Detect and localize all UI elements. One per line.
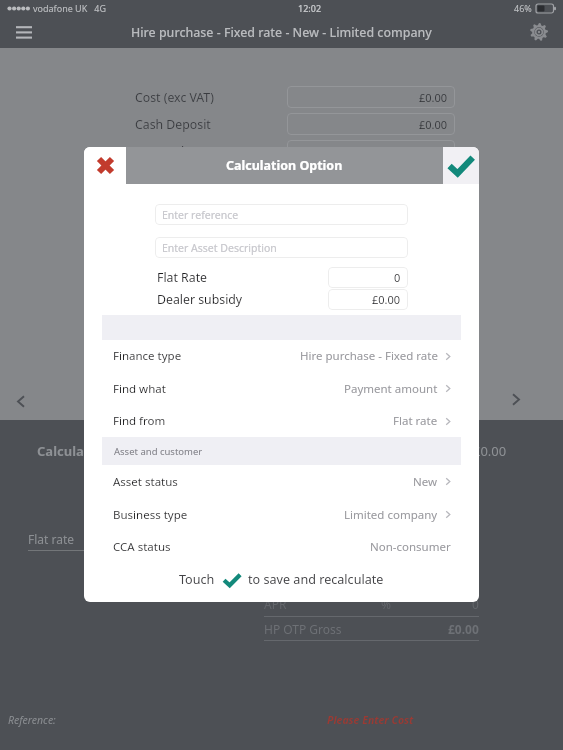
staticText: £0.00 [448, 621, 479, 637]
button[interactable]: Finance type [84, 340, 479, 372]
staticText: vodafone UK 4G [33, 2, 106, 14]
button[interactable]: Cancel [84, 147, 126, 184]
staticText: 12:02 [298, 2, 322, 14]
staticText: to save and recalculate [248, 571, 384, 588]
staticText: £0.00 [473, 442, 507, 460]
button[interactable]: CCA status [84, 531, 479, 563]
staticText: Flat rate [393, 413, 438, 429]
staticText: Flat rate [28, 531, 75, 547]
staticText: Calculate [37, 442, 98, 460]
staticText: Calculation Option [226, 157, 343, 174]
staticText: Finance type [113, 348, 182, 364]
button[interactable]: Asset status [84, 465, 479, 498]
button[interactable]: Menu [10, 18, 38, 46]
staticText: Reference: [8, 713, 56, 727]
staticText: Touch [179, 571, 215, 588]
staticText: £0.00 [419, 144, 448, 159]
staticText: New [413, 474, 438, 490]
staticText: Part Exchange [135, 143, 218, 160]
staticText: Cost (exc VAT) [135, 89, 214, 106]
button[interactable]: £0.00 [328, 289, 408, 310]
staticText: Please Enter Cost [327, 713, 414, 727]
button[interactable]: Enter reference [155, 204, 408, 225]
staticText: Non-consumer [370, 539, 451, 555]
button[interactable]: Enter Asset Description [155, 237, 408, 258]
button[interactable]: Find what [84, 372, 479, 405]
button[interactable]: Save [443, 147, 479, 184]
staticText: Hire purchase - Fixed rate [300, 348, 438, 364]
staticText: 0 [472, 596, 479, 612]
button[interactable]: 0 [328, 267, 408, 288]
staticText: Find from [113, 413, 166, 429]
staticText: APR [264, 596, 287, 612]
button[interactable]: Business type [84, 498, 479, 531]
staticText: Enter Asset Description [162, 241, 277, 255]
staticText: Flat Rate [157, 269, 208, 286]
staticText: Limited company [344, 507, 438, 523]
button[interactable]: Settings [525, 18, 553, 46]
staticText: % [381, 596, 391, 612]
staticText: 46% [514, 2, 532, 14]
button[interactable]: Find from [84, 405, 479, 437]
staticText: £0.00 [372, 292, 401, 307]
staticText: Business type [113, 507, 188, 523]
staticText: Payment amount [344, 381, 438, 397]
staticText: Enter reference [162, 208, 239, 222]
staticText: CCA status [113, 539, 171, 555]
staticText: Asset and customer [114, 445, 203, 458]
button[interactable]: Next [501, 384, 531, 414]
staticText: Hire purchase - Fixed rate - New - Limit… [131, 24, 432, 41]
staticText: £0.00 [419, 117, 448, 132]
staticText: Asset status [113, 474, 178, 490]
staticText: Dealer subsidy [157, 291, 243, 308]
staticText: Cash Deposit [135, 116, 211, 133]
staticText: Find what [113, 381, 166, 397]
staticText: £0.00 [419, 90, 448, 105]
button[interactable]: Previous [6, 386, 36, 416]
staticText: 0 [394, 270, 401, 285]
staticText: HP OTP Gross [264, 621, 342, 637]
